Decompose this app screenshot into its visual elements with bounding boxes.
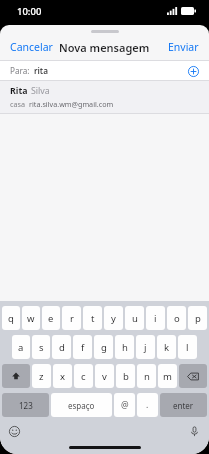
- button[interactable]: c: [74, 364, 93, 388]
- button[interactable]: espaço: [51, 393, 112, 417]
- staticText: i: [154, 312, 157, 325]
- staticText: Para:: [10, 65, 30, 76]
- button[interactable]: q: [2, 306, 20, 330]
- button[interactable]: Ditado: [187, 424, 202, 439]
- staticText: casa: [10, 99, 25, 109]
- button[interactable]: i: [146, 306, 165, 330]
- staticText: w: [27, 312, 35, 325]
- staticText: 10:00: [17, 5, 42, 18]
- button[interactable]: f: [73, 335, 92, 359]
- button[interactable]: Maiúsculas: [2, 364, 30, 388]
- staticText: z: [39, 370, 44, 383]
- button[interactable]: w: [22, 306, 40, 330]
- button[interactable]: Enviar: [162, 35, 209, 59]
- staticText: c: [81, 370, 86, 383]
- staticText: r: [70, 312, 74, 325]
- button[interactable]: v: [95, 364, 114, 388]
- button[interactable]: x: [53, 364, 72, 388]
- staticText: v: [102, 370, 107, 383]
- staticText: q: [8, 312, 14, 325]
- staticText: l: [186, 341, 189, 354]
- button[interactable]: g: [94, 335, 113, 359]
- staticText: a: [18, 341, 24, 354]
- button[interactable]: @: [114, 393, 135, 417]
- staticText: Rita: [10, 85, 28, 97]
- button[interactable]: t: [83, 306, 102, 330]
- staticText: t: [91, 312, 95, 325]
- button[interactable]: y: [104, 306, 123, 330]
- button[interactable]: m: [158, 364, 177, 388]
- button[interactable]: l: [178, 335, 197, 359]
- staticText: rita: [34, 65, 48, 76]
- staticText: Nova mensagem: [59, 40, 150, 55]
- staticText: j: [144, 341, 147, 354]
- button[interactable]: .: [137, 393, 158, 417]
- button[interactable]: s: [32, 335, 50, 359]
- staticText: n: [144, 370, 150, 383]
- button[interactable]: h: [115, 335, 134, 359]
- button[interactable]: Emoji: [7, 424, 22, 439]
- staticText: @: [121, 399, 129, 411]
- staticText: Cancelar: [10, 40, 53, 54]
- staticText: .: [146, 399, 149, 411]
- button[interactable]: n: [137, 364, 156, 388]
- staticText: Silva: [31, 85, 50, 97]
- button[interactable]: z: [32, 364, 51, 388]
- staticText: u: [132, 312, 138, 325]
- button[interactable]: p: [188, 306, 207, 330]
- button[interactable]: o: [167, 306, 186, 330]
- button[interactable]: k: [157, 335, 176, 359]
- button[interactable]: j: [136, 335, 155, 359]
- button[interactable]: Adicionar contato: [185, 63, 201, 79]
- button[interactable]: Apagar: [179, 364, 207, 388]
- staticText: espaço: [68, 400, 95, 411]
- staticText: x: [60, 370, 66, 383]
- staticText: b: [123, 370, 129, 383]
- staticText: enter: [173, 400, 194, 411]
- staticText: h: [122, 341, 128, 354]
- staticText: o: [174, 312, 180, 325]
- staticText: k: [164, 341, 170, 354]
- button[interactable]: Cancelar: [0, 35, 59, 59]
- button[interactable]: enter: [160, 393, 207, 417]
- button[interactable]: 123: [2, 393, 49, 417]
- staticText: Enviar: [168, 40, 199, 54]
- staticText: s: [39, 341, 44, 354]
- staticText: y: [111, 312, 116, 325]
- staticText: m: [163, 370, 172, 383]
- button[interactable]: d: [52, 335, 71, 359]
- staticText: d: [59, 341, 65, 354]
- button[interactable]: u: [125, 306, 144, 330]
- button[interactable]: Rita: [0, 81, 209, 114]
- staticText: p: [195, 312, 201, 325]
- button[interactable]: r: [62, 306, 81, 330]
- staticText: f: [81, 341, 85, 354]
- staticText: e: [48, 312, 54, 325]
- staticText: rita.silva.wm@gmail.com: [29, 99, 114, 109]
- staticText: g: [101, 341, 107, 354]
- button[interactable]: a: [12, 335, 30, 359]
- button[interactable]: b: [116, 364, 135, 388]
- button[interactable]: e: [42, 306, 60, 330]
- staticText: 123: [19, 400, 33, 411]
